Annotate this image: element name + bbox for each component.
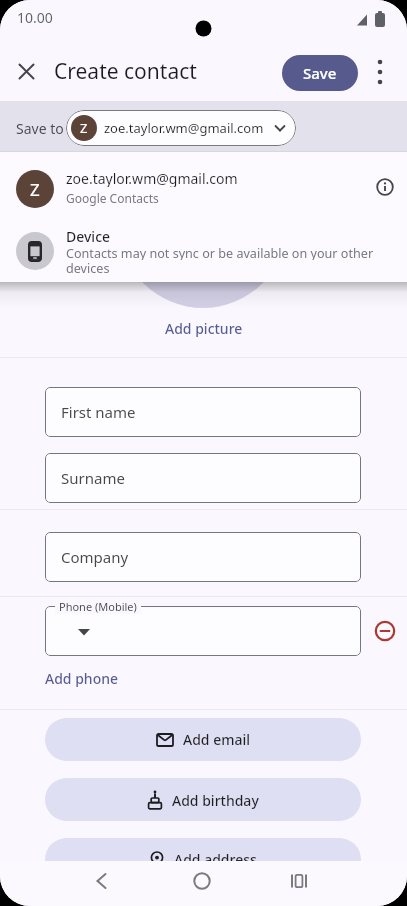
button[interactable]: Add birthday — [45, 778, 361, 821]
staticText: Device — [66, 227, 111, 245]
button[interactable] — [0, 158, 407, 218]
staticText: zoe.taylor.wm@gmail.com — [104, 119, 264, 137]
staticText: Save — [303, 63, 337, 83]
staticText: First name — [61, 402, 136, 422]
staticText: Add email — [183, 730, 251, 749]
staticText: Surname — [61, 468, 125, 488]
button[interactable] — [45, 664, 135, 690]
staticText: Add picture — [165, 319, 243, 338]
staticText: Company — [61, 547, 129, 567]
button[interactable]: Company — [45, 532, 361, 582]
button[interactable] — [10, 55, 42, 87]
button[interactable] — [45, 606, 361, 656]
staticText: 10.00 — [17, 8, 53, 27]
staticText: Add phone — [45, 669, 118, 688]
staticText: zoe.taylor.wm@gmail.com — [66, 169, 238, 187]
staticText: Add address — [174, 850, 257, 869]
button[interactable] — [366, 57, 394, 87]
staticText: Z — [80, 119, 88, 137]
button[interactable] — [374, 176, 396, 198]
button[interactable]: Save — [282, 55, 358, 91]
button[interactable] — [84, 864, 118, 898]
button[interactable]: Surname — [45, 453, 361, 503]
button[interactable] — [374, 620, 396, 642]
button[interactable] — [185, 864, 219, 898]
button[interactable]: Z — [66, 110, 296, 146]
staticText: Add birthday — [172, 791, 259, 810]
button[interactable]: Add email — [45, 718, 361, 761]
staticText: Z — [30, 178, 40, 201]
button[interactable]: Add address — [45, 838, 361, 881]
button[interactable]: First name — [45, 387, 361, 437]
button[interactable] — [163, 316, 243, 338]
button[interactable] — [0, 220, 407, 282]
button[interactable] — [282, 864, 316, 898]
staticText: Create contact — [54, 57, 197, 86]
staticText: devices — [66, 260, 110, 275]
staticText: Save to — [16, 119, 64, 138]
staticText: Contacts may not sync or be available on… — [66, 245, 374, 260]
staticText: Google Contacts — [66, 190, 159, 206]
staticText: Phone (Mobile) — [59, 599, 137, 614]
